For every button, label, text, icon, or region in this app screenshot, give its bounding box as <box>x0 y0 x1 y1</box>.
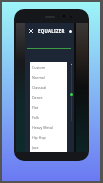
staticText: Classical <box>32 85 47 90</box>
button[interactable]: Folk <box>30 112 67 122</box>
button[interactable]: Hip Hop <box>30 132 67 142</box>
button[interactable]: Flat <box>30 102 67 112</box>
button[interactable]: Enable equalizer <box>66 27 74 35</box>
button[interactable]: Classical <box>30 82 67 92</box>
staticText: EQUALIZER <box>38 28 65 34</box>
staticText: Jazz <box>32 145 39 150</box>
staticText: Flat <box>32 105 39 110</box>
button[interactable]: Heavy Metal <box>30 122 67 132</box>
staticText: Heavy Metal <box>32 125 53 130</box>
staticText: Normal <box>32 75 45 80</box>
staticText: Hip Hop <box>32 135 46 140</box>
staticText: Custom <box>32 65 46 70</box>
button[interactable]: Close equalizer <box>26 26 35 35</box>
button[interactable]: Jazz <box>30 142 67 152</box>
button[interactable]: Custom <box>30 62 67 72</box>
staticText: Dance <box>32 95 43 100</box>
button[interactable]: Dance <box>30 92 67 102</box>
button[interactable]: Normal <box>30 72 67 82</box>
staticText: Folk <box>32 115 39 120</box>
